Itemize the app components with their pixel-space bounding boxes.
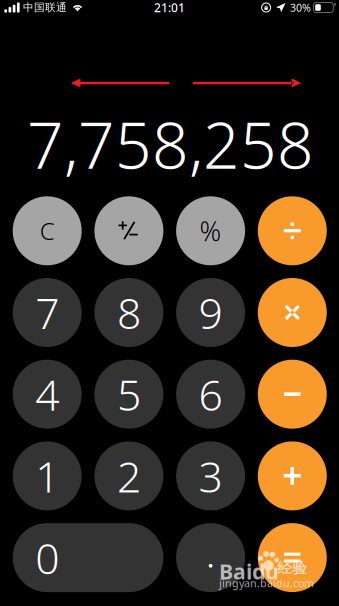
staticText: 中国联通	[23, 1, 67, 14]
staticText: 21:01	[154, 0, 185, 15]
staticText: %	[200, 213, 222, 248]
button[interactable]: Multiply	[258, 278, 327, 347]
staticText: 经验	[277, 559, 307, 577]
button[interactable]: 5	[94, 360, 163, 429]
staticText: 6	[199, 366, 223, 423]
staticText: 1	[35, 448, 59, 504]
button[interactable]: 4	[13, 360, 82, 429]
staticText: 4	[35, 366, 59, 423]
staticText: 5	[117, 366, 141, 423]
button[interactable]: 3	[176, 441, 245, 510]
staticText: 8	[117, 284, 141, 341]
button[interactable]: Toggle sign	[94, 196, 163, 265]
staticText: C	[40, 215, 55, 247]
staticText: 30%	[290, 0, 311, 15]
button[interactable]: %	[176, 196, 245, 265]
staticText: 0	[35, 529, 59, 586]
button[interactable]: Divide	[258, 196, 327, 265]
staticText: 9	[199, 284, 223, 341]
button[interactable]: 1	[13, 441, 82, 510]
button[interactable]: Decimal point	[176, 523, 245, 592]
staticText: jingyan.baidu.com	[219, 576, 314, 590]
button[interactable]: 0	[13, 523, 163, 592]
button[interactable]: 6	[176, 360, 245, 429]
button[interactable]: C	[13, 196, 82, 265]
button[interactable]: 2	[94, 441, 163, 510]
button[interactable]: Equals	[258, 523, 327, 592]
staticText: 2	[117, 448, 141, 504]
button[interactable]: Add	[258, 441, 327, 510]
staticText: 7,758,258	[27, 101, 314, 186]
button[interactable]: 7	[13, 278, 82, 347]
staticText: Baidu	[219, 557, 279, 585]
staticText: 7	[35, 284, 59, 341]
button[interactable]: Subtract	[258, 360, 327, 429]
staticText: 3	[199, 448, 223, 504]
button[interactable]: 8	[94, 278, 163, 347]
button[interactable]: 9	[176, 278, 245, 347]
